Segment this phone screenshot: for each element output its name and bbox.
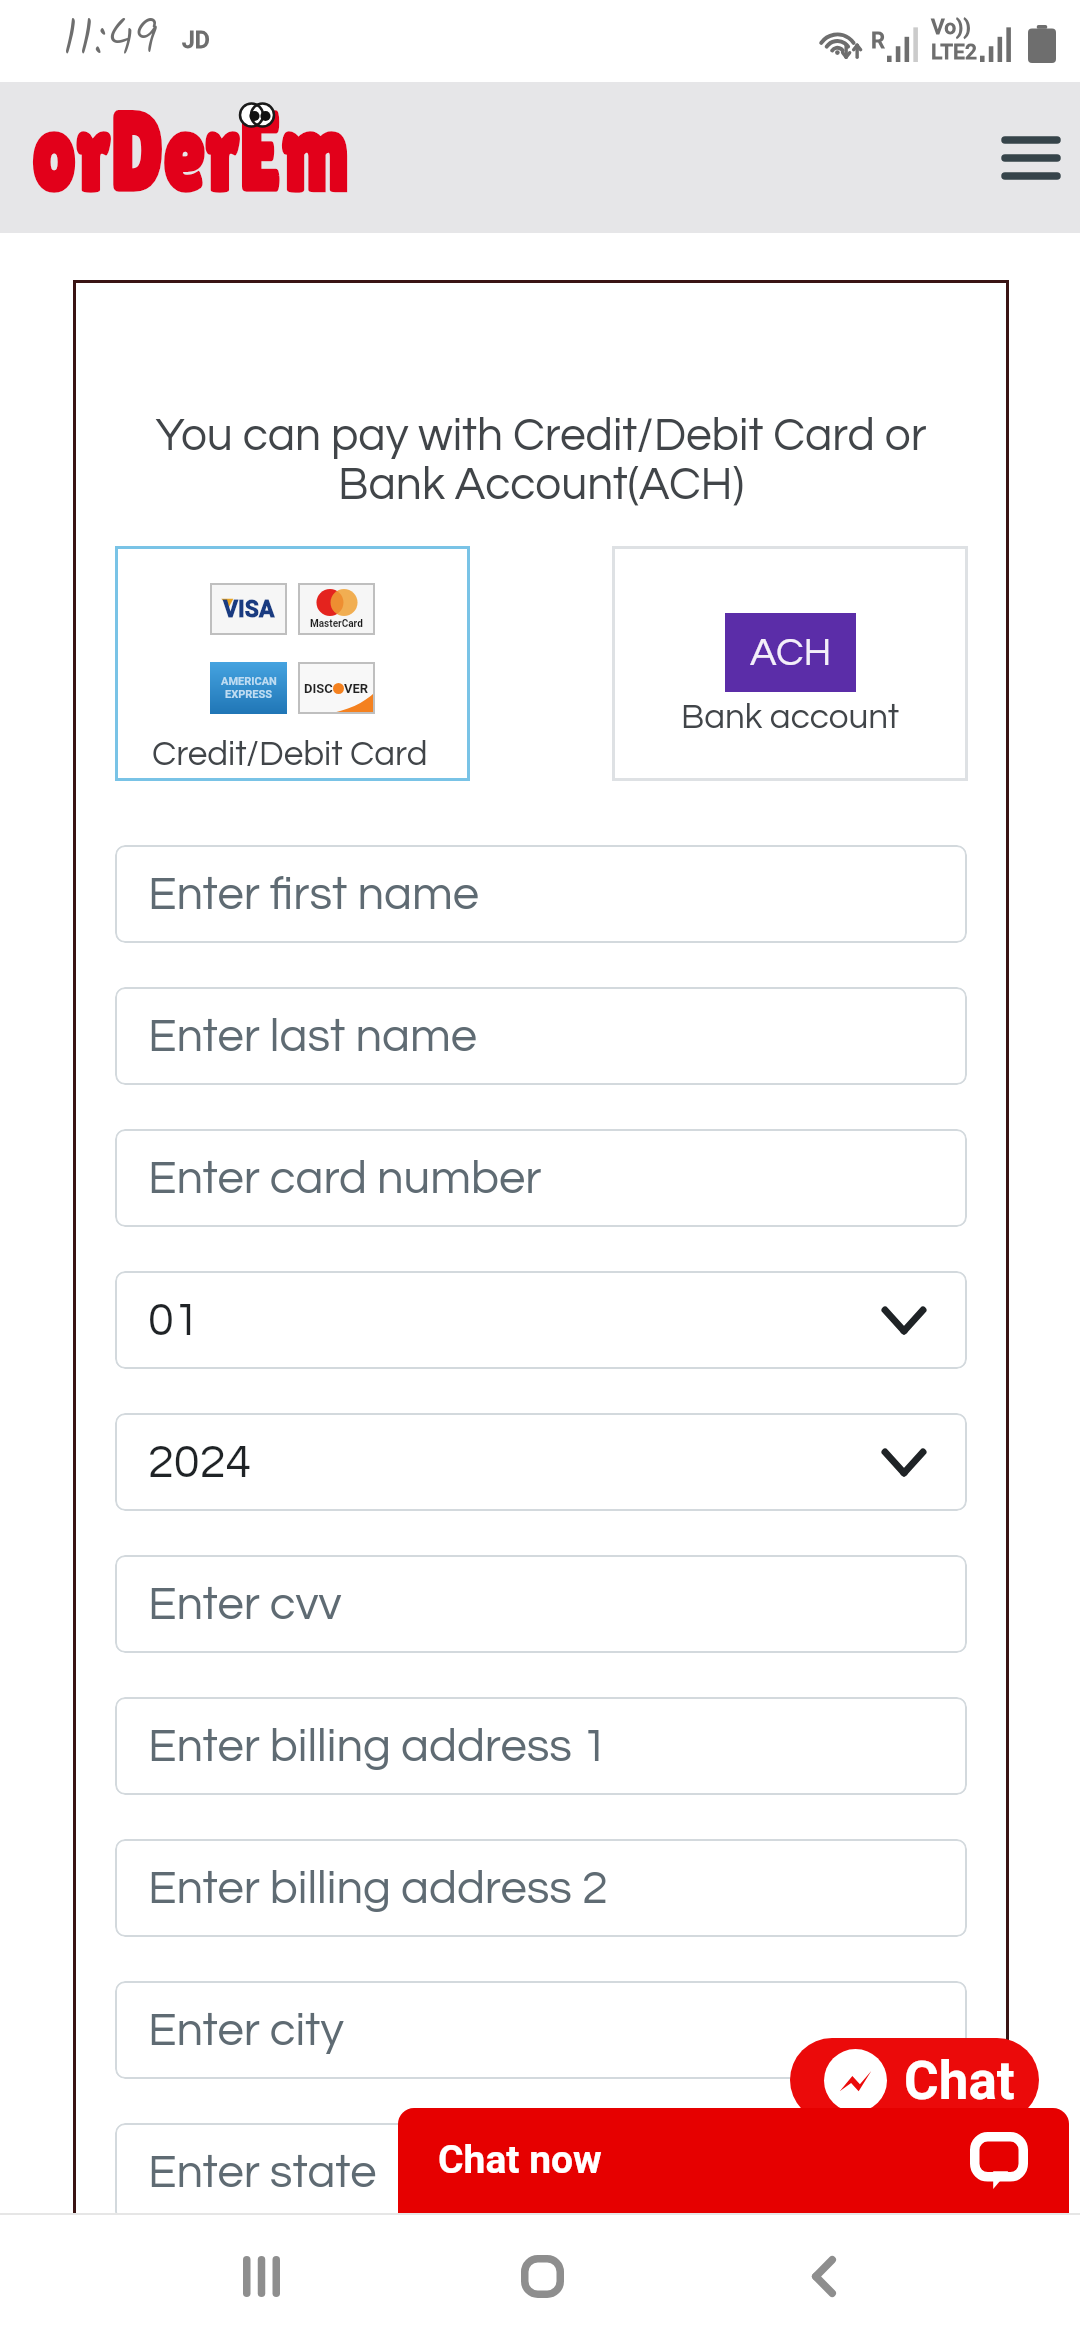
staticText: Vo)): [931, 15, 971, 40]
staticText: JD: [182, 27, 210, 54]
staticText: Chat now: [438, 2137, 602, 2183]
staticText: Enter cvv: [148, 1580, 342, 1628]
button[interactable]: Recent apps: [190, 2213, 332, 2340]
staticText: Enter billing address 1: [148, 1722, 608, 1770]
staticText: Enter billing address 2: [148, 1864, 608, 1912]
button[interactable]: Enter first name: [115, 845, 967, 943]
staticText: Enter first name: [148, 870, 479, 918]
staticText: Enter state: [148, 2148, 377, 2196]
button[interactable]: Menu: [988, 115, 1074, 201]
staticText: Bank account: [681, 699, 900, 735]
button[interactable]: Enter billing address 1: [115, 1697, 967, 1795]
staticText: LTE2: [931, 40, 977, 65]
button[interactable]: Enter cvv: [115, 1555, 967, 1653]
button[interactable]: Enter card number: [115, 1129, 967, 1227]
staticText: ACH: [750, 632, 832, 673]
button[interactable]: Chat: [790, 2038, 1039, 2122]
staticText: DISC: [304, 681, 333, 696]
button[interactable]: Enter billing address 2: [115, 1839, 967, 1937]
button[interactable]: Home: [471, 2213, 613, 2340]
button[interactable]: 2024: [115, 1413, 967, 1511]
staticText: 01: [148, 1296, 200, 1344]
staticText: MasterCard: [310, 618, 363, 630]
button[interactable]: VISA: [115, 546, 470, 781]
staticText: VISA: [223, 596, 275, 623]
staticText: Chat: [904, 2050, 1015, 2112]
staticText: orDerEm: [32, 87, 350, 215]
staticText: Enter card number: [148, 1154, 542, 1202]
button[interactable]: Chat now: [398, 2108, 1069, 2213]
button[interactable]: 01: [115, 1271, 967, 1369]
button[interactable]: Back: [753, 2213, 895, 2340]
staticText: VER: [344, 681, 369, 696]
staticText: Enter last name: [148, 1012, 477, 1060]
staticText: EXPRESS: [225, 688, 273, 701]
staticText: AMERICAN: [221, 675, 277, 688]
staticText: R: [871, 28, 885, 54]
staticText: 2024: [148, 1438, 252, 1486]
staticText: Credit/Debit Card: [152, 736, 428, 772]
staticText: You can pay with Credit/Debit Card or Ba…: [73, 412, 1009, 509]
staticText: 11:49: [62, 0, 158, 79]
staticText: Enter city: [148, 2006, 344, 2054]
button[interactable]: Enter state: [115, 2123, 967, 2213]
button[interactable]: ACH: [612, 546, 968, 781]
button[interactable]: Enter last name: [115, 987, 967, 1085]
button[interactable]: Enter city: [115, 1981, 967, 2079]
